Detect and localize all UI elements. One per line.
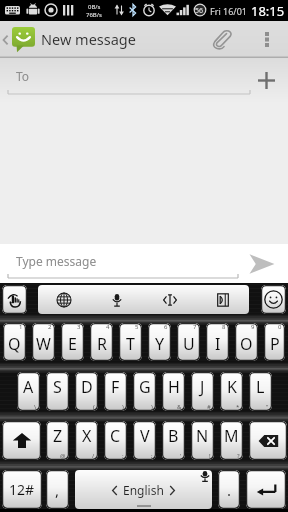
staticText: 7 <box>193 323 197 331</box>
staticText: " <box>266 403 269 411</box>
button[interactable]: , <box>46 470 69 509</box>
button[interactable]: Z <box>46 421 69 460</box>
button[interactable]: Clipboard <box>196 285 249 314</box>
button[interactable]: Move cursor <box>143 285 196 314</box>
button[interactable]: O <box>235 323 258 361</box>
staticText: Z <box>53 425 63 447</box>
staticText: @ <box>60 452 66 460</box>
staticText: P <box>270 333 280 355</box>
staticText: ' <box>180 452 182 460</box>
button[interactable]: Voice input <box>90 285 143 314</box>
button[interactable]: Enter <box>246 470 286 509</box>
staticText: 5 <box>135 323 139 331</box>
staticText: W <box>36 333 51 355</box>
button[interactable]: 12# <box>2 470 42 509</box>
button[interactable]: E <box>61 323 84 361</box>
staticText: \ <box>34 403 37 411</box>
button[interactable]: Attach <box>197 21 245 58</box>
button[interactable]: C <box>104 421 127 460</box>
staticText: * <box>236 403 240 411</box>
button[interactable]: Backspace <box>249 421 287 460</box>
button[interactable]: Hide keyboard <box>2 285 27 314</box>
staticText: 8 <box>222 323 226 331</box>
staticText: 0 <box>278 323 282 331</box>
staticText: T <box>126 333 135 355</box>
staticText: V <box>140 425 150 447</box>
button[interactable]: Add recipient <box>244 58 288 103</box>
button[interactable]: P <box>264 323 285 361</box>
button[interactable]: L <box>249 372 272 411</box>
staticText: A <box>23 376 34 398</box>
staticText: I <box>215 333 221 355</box>
staticText: : <box>122 452 124 460</box>
staticText: X <box>82 425 92 447</box>
staticText: 0B/s <box>88 3 101 11</box>
button[interactable]: V <box>133 421 156 460</box>
staticText: N <box>196 425 209 447</box>
staticText: 56 <box>195 6 204 16</box>
button[interactable]: Emoji <box>261 285 286 314</box>
button[interactable]: A <box>17 372 40 411</box>
button[interactable]: N <box>191 421 214 460</box>
staticText: 4 <box>106 323 110 331</box>
button[interactable]: U <box>177 323 200 361</box>
button[interactable]: R <box>90 323 113 361</box>
staticText: ? <box>237 452 240 460</box>
other: Navigate up <box>2 31 9 49</box>
staticText: ) <box>122 403 124 411</box>
staticText: E <box>68 333 77 355</box>
button[interactable]: I <box>206 323 229 361</box>
staticText: M <box>224 425 239 447</box>
button[interactable]: H <box>162 372 185 411</box>
button[interactable]: D <box>75 372 98 411</box>
staticText: F <box>111 376 120 398</box>
staticText: 3 <box>77 323 81 331</box>
button[interactable]: Navigate up <box>0 21 38 58</box>
staticText: _ <box>63 403 66 411</box>
button[interactable]: Y <box>148 323 171 361</box>
button[interactable]: F <box>104 372 127 411</box>
button[interactable]: T <box>119 323 142 361</box>
staticText: English <box>123 482 164 498</box>
staticText: S <box>53 376 62 398</box>
button[interactable]: Q <box>3 323 26 361</box>
button[interactable]: M <box>220 421 243 460</box>
staticText: ; <box>151 452 153 460</box>
staticText: U <box>183 333 195 355</box>
staticText: L <box>256 376 265 398</box>
button[interactable]: B <box>162 421 185 460</box>
staticText: / <box>92 452 95 460</box>
staticText: , <box>55 480 60 500</box>
staticText: & <box>177 403 182 411</box>
button[interactable]: J <box>191 372 214 411</box>
staticText: Type message <box>16 253 97 269</box>
button[interactable]: X <box>75 421 98 460</box>
staticText: ( <box>93 403 95 411</box>
staticText: # <box>207 403 211 411</box>
staticText: O <box>240 333 253 355</box>
button[interactable]: English <box>75 470 212 509</box>
button[interactable]: S <box>46 372 69 411</box>
staticText: 12# <box>9 480 35 499</box>
staticText: K <box>227 376 237 398</box>
staticText: 76B/s <box>86 11 102 19</box>
staticText: Fri 16/01 <box>210 5 247 17</box>
staticText: To <box>16 68 30 84</box>
button[interactable]: More options <box>245 21 288 58</box>
staticText: 9 <box>251 323 255 331</box>
staticText: C <box>110 425 121 447</box>
staticText: H <box>168 376 180 398</box>
staticText: D <box>81 376 93 398</box>
button[interactable]: K <box>220 372 243 411</box>
staticText: 18:15 <box>251 2 285 20</box>
button[interactable]: Change language <box>38 285 90 314</box>
button[interactable]: Send <box>236 244 288 283</box>
button[interactable]: Shift <box>2 421 41 460</box>
button[interactable]: W <box>32 323 55 361</box>
button[interactable]: . <box>218 470 240 509</box>
staticText: 6 <box>164 323 168 331</box>
staticText: ! <box>209 452 211 460</box>
staticText: G <box>139 376 151 398</box>
button[interactable]: G <box>133 372 156 411</box>
staticText: R <box>97 333 107 355</box>
